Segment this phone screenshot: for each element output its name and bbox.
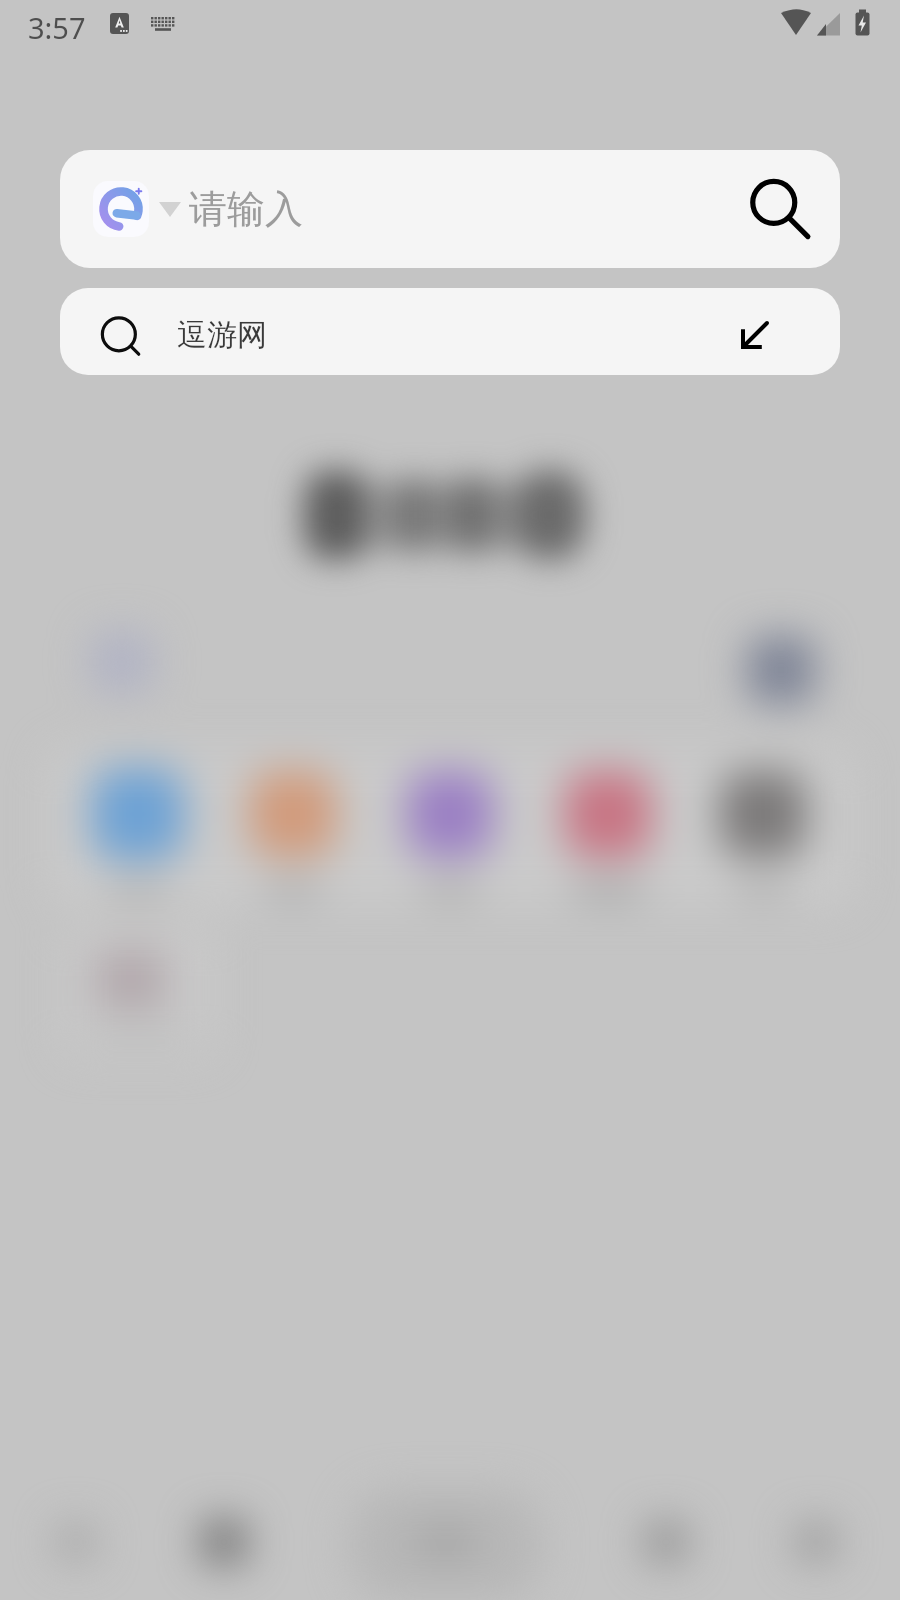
button[interactable]: New tab — [360, 1488, 540, 1600]
button[interactable]: 请输入 — [60, 150, 840, 268]
button[interactable]: Taobao — [180, 744, 360, 904]
button[interactable]: Tabs — [540, 1488, 720, 1600]
button[interactable]: 逗游网 — [60, 288, 840, 375]
button[interactable]: Video — [360, 744, 540, 904]
staticText: 3:57 — [28, 8, 86, 47]
button[interactable]: Bookmarks — [180, 1488, 360, 1600]
button[interactable]: Search — [741, 170, 825, 254]
button[interactable]: Insert query — [726, 308, 782, 364]
button[interactable]: Hao123 — [0, 744, 180, 904]
button[interactable]: Menu — [720, 1488, 900, 1600]
button[interactable]: News — [540, 744, 720, 904]
staticText: 请输入 — [189, 185, 303, 233]
staticText: 逗游网 — [177, 316, 267, 354]
button[interactable]: More — [720, 744, 900, 904]
